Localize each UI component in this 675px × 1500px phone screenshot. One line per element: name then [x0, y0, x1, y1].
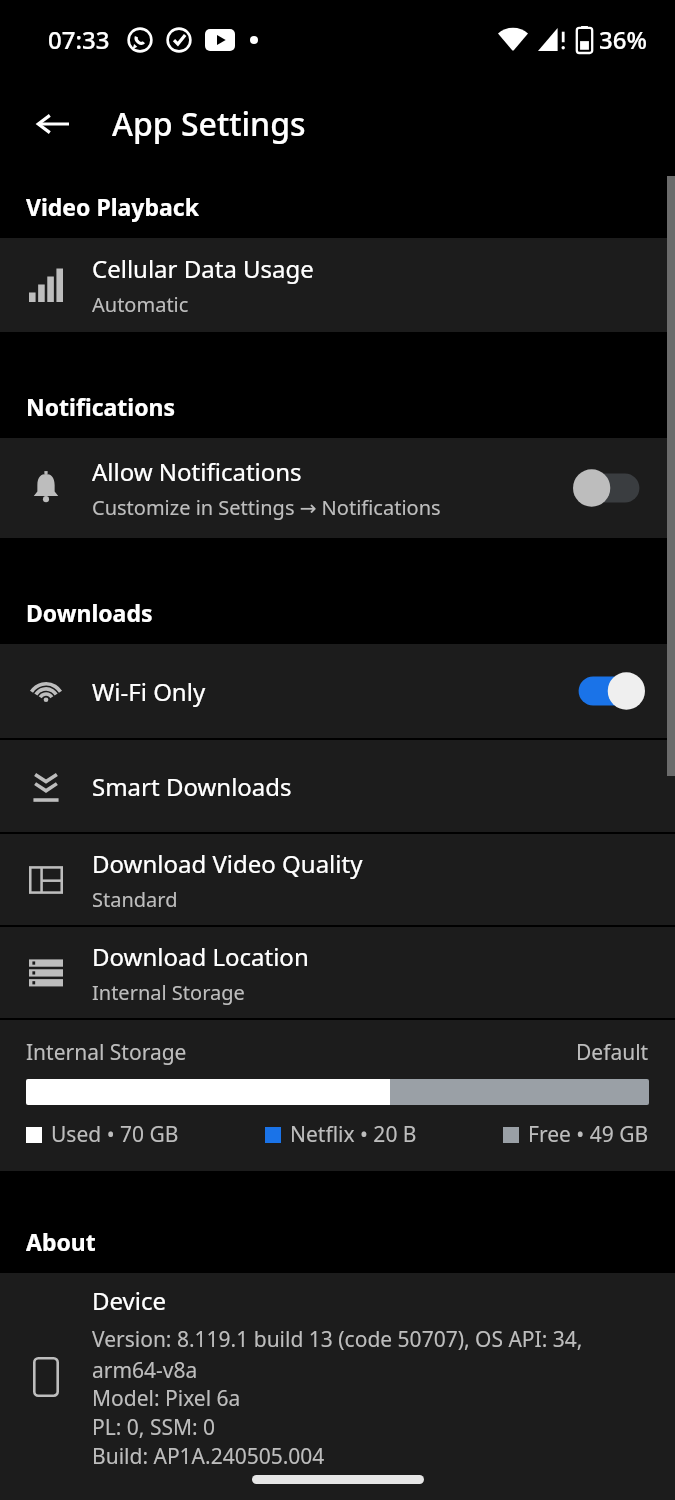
button[interactable]: Switch off	[571, 461, 647, 515]
button[interactable]: Allow Notifications	[0, 438, 675, 538]
staticText: Standard	[92, 886, 178, 913]
staticText: 07:33	[48, 23, 110, 56]
staticText: Version: 8.119.1 build 13 (code 50707), …	[92, 1325, 651, 1384]
staticText: Default	[576, 1038, 649, 1067]
staticText: Netflix • 20 B	[290, 1120, 417, 1149]
button[interactable]: Download Location	[0, 927, 675, 1018]
staticText: Internal Storage	[26, 1038, 187, 1067]
button[interactable]: Back	[24, 95, 82, 153]
staticText: Downloads	[26, 597, 153, 628]
button[interactable]: Smart Downloads	[0, 740, 675, 832]
staticText: Video Playback	[26, 191, 199, 222]
staticText: PL: 0, SSM: 0	[92, 1413, 216, 1442]
staticText: About	[26, 1226, 96, 1257]
staticText: Device	[92, 1284, 167, 1317]
button[interactable]: Switch on	[571, 664, 647, 718]
staticText: Wi-Fi Only	[92, 675, 206, 708]
staticText: Allow Notifications	[92, 455, 302, 488]
staticText: Build: AP1A.240505.004	[92, 1442, 325, 1471]
staticText: Smart Downloads	[92, 770, 292, 803]
button[interactable]: Download Video Quality	[0, 834, 675, 925]
button[interactable]: Wi-Fi Only	[0, 644, 675, 738]
button[interactable]: Cellular Data Usage	[0, 238, 675, 332]
staticText: Used • 70 GB	[51, 1120, 179, 1149]
staticText: Internal Storage	[92, 979, 245, 1006]
button[interactable]: Device	[0, 1273, 675, 1481]
staticText: Notifications	[26, 391, 176, 422]
staticText: Download Video Quality	[92, 847, 363, 880]
staticText: Automatic	[92, 291, 189, 318]
staticText: 36%	[599, 23, 647, 56]
staticText: Cellular Data Usage	[92, 252, 314, 285]
staticText: Customize in Settings → Notifications	[92, 494, 441, 521]
staticText: Model: Pixel 6a	[92, 1384, 241, 1413]
staticText: Download Location	[92, 940, 309, 973]
staticText: App Settings	[112, 102, 306, 146]
staticText: Free • 49 GB	[528, 1120, 649, 1149]
